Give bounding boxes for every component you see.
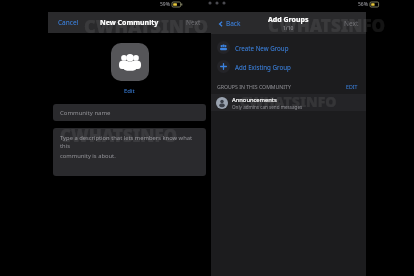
button[interactable]: Community photo bbox=[111, 43, 149, 81]
staticText: Edit bbox=[124, 87, 135, 95]
staticText: CWHATSINFO bbox=[268, 14, 386, 37]
button[interactable]: EDIT bbox=[344, 82, 360, 91]
staticText: Next bbox=[186, 18, 201, 27]
button[interactable]: Create New Group bbox=[211, 38, 366, 57]
button[interactable]: Edit bbox=[120, 86, 139, 96]
staticText: 59% bbox=[160, 1, 170, 8]
staticText: Cancel bbox=[58, 18, 79, 27]
staticText: CWHATSINFO bbox=[240, 92, 337, 111]
button[interactable]: Community name bbox=[53, 104, 206, 121]
staticText: EDIT bbox=[346, 83, 358, 90]
staticText: Add Existing Group bbox=[235, 63, 291, 71]
staticText: Type a description that lets members kno… bbox=[60, 134, 199, 150]
button[interactable]: Back bbox=[216, 17, 243, 30]
staticText: community is about. bbox=[60, 152, 116, 160]
staticText: New Community bbox=[100, 18, 159, 28]
staticText: Add Groups bbox=[268, 15, 309, 25]
staticText: Announcements bbox=[232, 96, 277, 104]
staticText: GROUPS IN THIS COMMUNITY bbox=[217, 83, 291, 90]
button[interactable]: Announcements bbox=[211, 94, 366, 111]
staticText: Next bbox=[344, 19, 359, 28]
staticText: Only admins can send messages bbox=[232, 104, 303, 110]
button[interactable]: Next bbox=[184, 16, 203, 29]
staticText: Community name bbox=[60, 109, 111, 117]
staticText: CWHATSINFO bbox=[84, 14, 208, 39]
staticText: 56% bbox=[358, 1, 368, 8]
button[interactable]: Type a description that lets members kno… bbox=[53, 128, 206, 176]
button[interactable]: Add Existing Group bbox=[211, 57, 366, 76]
staticText: Back bbox=[226, 19, 241, 28]
staticText: 1/10 bbox=[283, 25, 294, 32]
staticText: Create New Group bbox=[235, 44, 289, 52]
staticText: CWHATSINFO bbox=[60, 124, 178, 147]
button[interactable]: Next bbox=[342, 17, 361, 30]
button[interactable]: Cancel bbox=[56, 16, 81, 29]
